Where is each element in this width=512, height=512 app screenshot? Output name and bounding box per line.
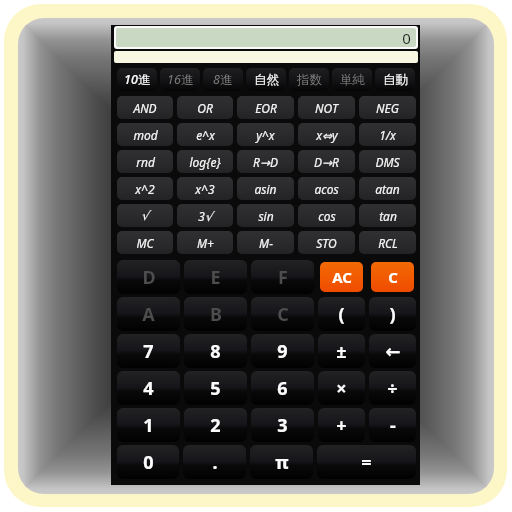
staticText: sin xyxy=(258,208,274,224)
staticText: 進 xyxy=(181,72,194,88)
button[interactable]: π xyxy=(250,445,313,479)
button[interactable]: EOR xyxy=(237,96,294,119)
button[interactable]: STO xyxy=(298,231,355,254)
button[interactable]: 16 xyxy=(160,68,200,91)
button[interactable]: A xyxy=(117,297,180,331)
button[interactable]: 8 xyxy=(184,334,247,368)
button[interactable]: - xyxy=(369,408,416,442)
staticText: rnd xyxy=(136,154,155,170)
button[interactable]: cos xyxy=(298,204,355,227)
staticText: 10 xyxy=(124,71,138,88)
button[interactable]: atan xyxy=(359,177,416,200)
button[interactable]: OR xyxy=(177,96,233,119)
staticText: 9 xyxy=(277,339,288,364)
staticText: . xyxy=(212,450,218,475)
button[interactable]: B xyxy=(184,297,247,331)
staticText: ± xyxy=(336,339,347,364)
button[interactable]: C xyxy=(371,262,414,292)
button[interactable]: 8 xyxy=(203,68,243,91)
staticText: ← xyxy=(385,341,401,362)
staticText: mod xyxy=(133,127,158,143)
button[interactable]: √ xyxy=(117,204,173,227)
staticText: ) xyxy=(389,302,396,327)
staticText: RCL xyxy=(378,235,398,251)
button[interactable]: 自動 xyxy=(375,68,415,91)
staticText: tan xyxy=(379,208,397,224)
button[interactable]: y^x xyxy=(237,123,294,146)
button[interactable]: = xyxy=(317,445,416,479)
button[interactable]: ÷ xyxy=(369,371,416,405)
button[interactable]: NOT xyxy=(298,96,355,119)
button[interactable]: RCL xyxy=(359,231,416,254)
staticText: ÷ xyxy=(387,376,398,401)
button[interactable]: D→R xyxy=(298,150,355,173)
staticText: ( xyxy=(338,302,345,327)
staticText: 1 xyxy=(143,413,154,438)
button[interactable]: ← xyxy=(369,334,416,368)
button[interactable]: E xyxy=(184,260,247,294)
button[interactable]: NEG xyxy=(359,96,416,119)
button[interactable]: AC xyxy=(320,262,363,292)
staticText: STO xyxy=(316,235,337,251)
button[interactable]: rnd xyxy=(117,150,173,173)
button[interactable]: tan xyxy=(359,204,416,227)
button[interactable]: sin xyxy=(237,204,294,227)
button[interactable]: DMS xyxy=(359,150,416,173)
staticText: D→R xyxy=(314,154,339,170)
button[interactable]: 自然 xyxy=(246,68,286,91)
button[interactable]: 3 xyxy=(251,408,314,442)
staticText: A xyxy=(142,302,155,327)
button[interactable]: 1 xyxy=(117,408,180,442)
button[interactable]: x^2 xyxy=(117,177,173,200)
button[interactable]: 単純 xyxy=(332,68,372,91)
button[interactable]: M+ xyxy=(177,231,233,254)
button[interactable]: 10 xyxy=(117,68,157,91)
button[interactable]: 9 xyxy=(251,334,314,368)
staticText: y^x xyxy=(256,127,275,143)
button[interactable]: C xyxy=(251,297,314,331)
button[interactable]: F xyxy=(251,260,314,294)
button[interactable]: 6 xyxy=(251,371,314,405)
button[interactable]: 1/x xyxy=(359,123,416,146)
button[interactable]: 5 xyxy=(184,371,247,405)
staticText: √ xyxy=(141,209,149,223)
button[interactable]: 3√ xyxy=(177,204,233,227)
button[interactable]: R→D xyxy=(237,150,294,173)
button[interactable]: 4 xyxy=(117,371,180,405)
staticText: acos xyxy=(314,181,339,197)
staticText: M+ xyxy=(197,235,214,251)
button[interactable]: MC xyxy=(117,231,173,254)
button[interactable]: + xyxy=(318,408,365,442)
staticText: π xyxy=(275,450,289,475)
button[interactable]: ) xyxy=(369,297,416,331)
button[interactable]: M- xyxy=(237,231,294,254)
button[interactable]: 指数 xyxy=(289,68,329,91)
button[interactable]: x⇔y xyxy=(298,123,355,146)
staticText: + xyxy=(336,413,347,438)
button[interactable]: AND xyxy=(117,96,173,119)
button[interactable]: × xyxy=(318,371,365,405)
button[interactable]: 0 xyxy=(117,445,179,479)
staticText: 3 xyxy=(277,413,288,438)
staticText: 6 xyxy=(277,376,288,401)
staticText: NOT xyxy=(315,100,338,116)
staticText: E xyxy=(210,265,221,290)
button[interactable]: . xyxy=(183,445,246,479)
button[interactable]: mod xyxy=(117,123,173,146)
staticText: D xyxy=(142,265,156,290)
button[interactable]: 7 xyxy=(117,334,180,368)
button[interactable]: ( xyxy=(318,297,365,331)
button[interactable]: e^x xyxy=(177,123,233,146)
button[interactable]: ± xyxy=(318,334,365,368)
button[interactable]: D xyxy=(117,260,180,294)
button[interactable]: acos xyxy=(298,177,355,200)
button[interactable]: asin xyxy=(237,177,294,200)
staticText: 進 xyxy=(220,72,233,88)
button[interactable]: 2 xyxy=(184,408,247,442)
button[interactable]: log{e} xyxy=(177,150,233,173)
button[interactable]: x^3 xyxy=(177,177,233,200)
staticText: 4 xyxy=(143,376,154,401)
staticText: 3√ xyxy=(198,208,213,224)
staticText: DMS xyxy=(375,154,400,170)
staticText: 1/x xyxy=(379,127,396,143)
